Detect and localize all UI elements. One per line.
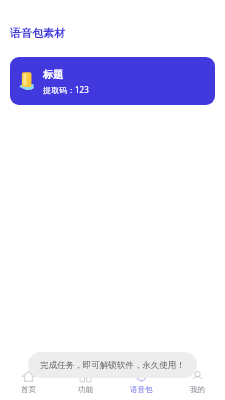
button[interactable]: 功能 xyxy=(57,366,113,400)
staticText: 完成任务，即可解锁软件，永久使用！ xyxy=(40,360,185,371)
other: 功能 xyxy=(79,370,92,383)
staticText: 提取码：123 xyxy=(43,84,89,95)
staticText: 功能 xyxy=(78,385,93,394)
other: 我的 xyxy=(191,370,204,383)
staticText: 语音包素材 xyxy=(10,26,65,40)
staticText: 我的 xyxy=(190,385,205,394)
button[interactable]: 首页 xyxy=(0,366,57,400)
button[interactable]: 标题 xyxy=(10,57,215,105)
staticText: 首页 xyxy=(21,385,36,394)
button[interactable]: 语音包 xyxy=(113,366,169,400)
staticText: 语音包 xyxy=(130,385,153,394)
other: 语音包 xyxy=(135,370,148,383)
other: 首页 xyxy=(22,370,35,383)
button[interactable]: 我的 xyxy=(169,366,225,400)
staticText: 标题 xyxy=(43,68,63,81)
